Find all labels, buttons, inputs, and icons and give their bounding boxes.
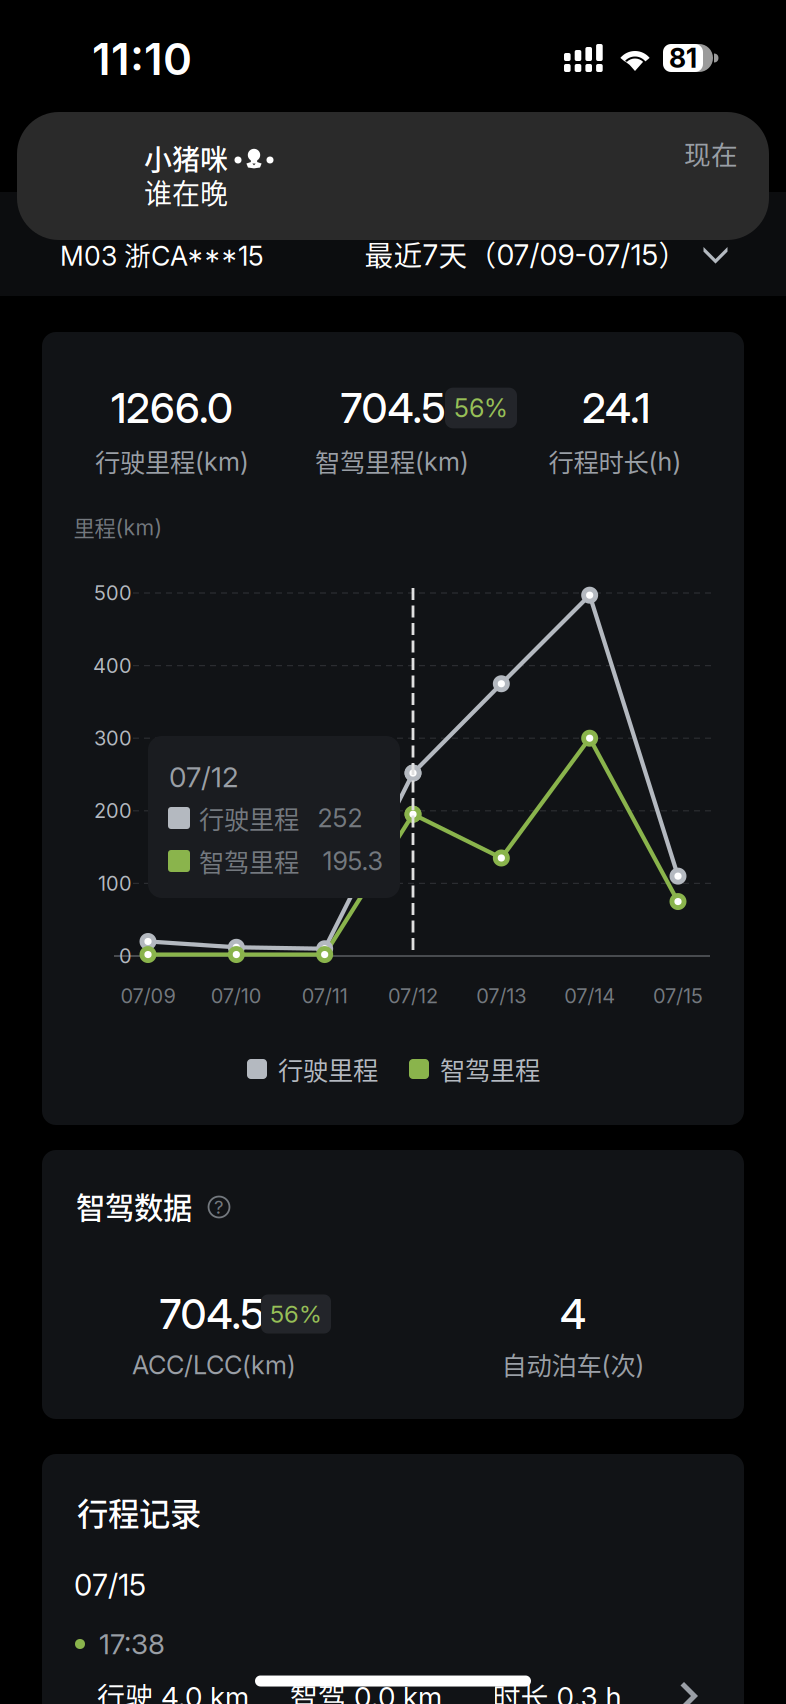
staticText: 07/14: [564, 984, 615, 1008]
staticText: 252: [317, 803, 362, 833]
staticText: 行程记录: [77, 1489, 201, 1535]
staticText: 07/15: [653, 984, 703, 1008]
staticText: 谁在晚: [144, 172, 228, 212]
staticText: 56%: [454, 393, 508, 423]
staticText: 07/12: [169, 760, 239, 794]
staticText: 400: [93, 653, 132, 678]
staticText: 里程(km): [73, 512, 162, 542]
staticText: ACC/LCC(km): [132, 1350, 296, 1380]
staticText: 智驾里程: [440, 1051, 540, 1087]
staticText: 智驾里程(km): [315, 443, 469, 479]
staticText: 智驾数据: [76, 1185, 192, 1227]
staticText: 最近7天（07/09-07/15）: [364, 233, 687, 275]
staticText: 07/15: [74, 1567, 146, 1603]
staticText: 300: [94, 726, 132, 750]
button[interactable]: M03 浙CA***15: [42, 209, 282, 299]
staticText: 07/09: [120, 984, 175, 1008]
staticText: 07/13: [476, 984, 526, 1008]
staticText: 17:38: [99, 1627, 165, 1661]
staticText: 07/12: [388, 984, 438, 1008]
staticText: 行驶 4.0 km: [97, 1676, 249, 1704]
button[interactable]: 小猪咪: [0, 0, 786, 1704]
staticText: 行程时长(h): [548, 443, 681, 479]
staticText: 智驾里程: [199, 843, 299, 879]
staticText: 智驾 0.0 km: [290, 1676, 442, 1704]
staticText: 56%: [270, 1299, 322, 1328]
staticText: 时长 0.3 h: [492, 1676, 621, 1704]
staticText: 4: [560, 1289, 586, 1339]
staticText: 小猪咪: [144, 138, 228, 178]
staticText: 07/11: [302, 984, 348, 1008]
staticText: 500: [94, 581, 132, 605]
staticText: 0: [119, 944, 132, 968]
staticText: 200: [94, 799, 132, 823]
staticText: 195.3: [322, 846, 383, 876]
staticText: 704.5: [340, 383, 445, 433]
staticText: 704.5: [159, 1289, 264, 1339]
button[interactable]: 最近7天（07/09-07/15）: [354, 209, 739, 299]
staticText: 1266.0: [111, 383, 233, 433]
staticText: 行驶里程: [278, 1051, 378, 1087]
staticText: M03 浙CA***15: [60, 235, 264, 273]
staticText: 现在: [684, 134, 738, 172]
staticText: 24.1: [582, 383, 650, 433]
staticText: 行驶里程: [199, 800, 299, 836]
staticText: 81: [669, 42, 697, 74]
button[interactable]: 17:38: [42, 1608, 744, 1704]
staticText: 100: [98, 871, 132, 895]
staticText: ?: [214, 1196, 224, 1218]
staticText: 行驶里程(km): [95, 443, 249, 479]
staticText: 07/10: [211, 984, 262, 1008]
staticText: 11:10: [92, 32, 192, 86]
staticText: 自动泊车(次): [501, 1346, 644, 1382]
